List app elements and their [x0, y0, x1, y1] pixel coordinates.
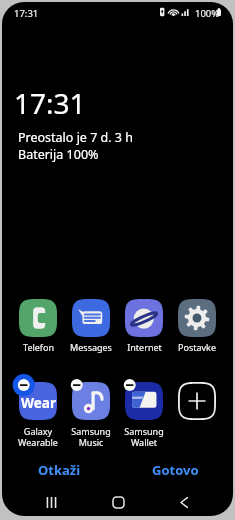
staticText: Otkaži — [38, 461, 81, 479]
staticText: Galaxy Wearable — [18, 425, 58, 449]
staticText: Preostalo je 7 d. 3 h — [18, 129, 133, 146]
button[interactable]: Add app — [171, 382, 223, 420]
staticText: 17:31 — [14, 84, 86, 122]
staticText: Internet — [127, 341, 162, 353]
staticText: Samsung Wallet — [124, 425, 164, 449]
staticText: Gotovo — [152, 461, 199, 479]
staticText: 17:31 — [14, 7, 39, 20]
button[interactable]: Messages — [65, 299, 117, 337]
button[interactable]: Galaxy Wearable — [12, 382, 64, 420]
button[interactable]: Back — [168, 489, 200, 515]
button[interactable]: Internet — [118, 299, 170, 337]
staticText: 100% — [195, 7, 220, 20]
button[interactable]: Gotovo — [117, 458, 233, 482]
button[interactable]: Postavke — [171, 299, 223, 337]
staticText: Messages — [70, 341, 112, 353]
button[interactable]: Home — [102, 489, 134, 515]
staticText: Samsung Music — [71, 425, 111, 449]
button[interactable]: Telefon — [12, 299, 64, 337]
staticText: Wear — [21, 394, 56, 412]
staticText: Postavke — [178, 341, 216, 353]
button[interactable]: Samsung Music — [65, 382, 117, 420]
staticText: Telefon — [23, 341, 54, 353]
button[interactable]: Otkaži — [2, 458, 117, 482]
button[interactable]: Recent apps — [35, 489, 67, 515]
button[interactable]: Samsung Wallet — [118, 382, 170, 420]
staticText: Baterija 100% — [18, 146, 99, 163]
